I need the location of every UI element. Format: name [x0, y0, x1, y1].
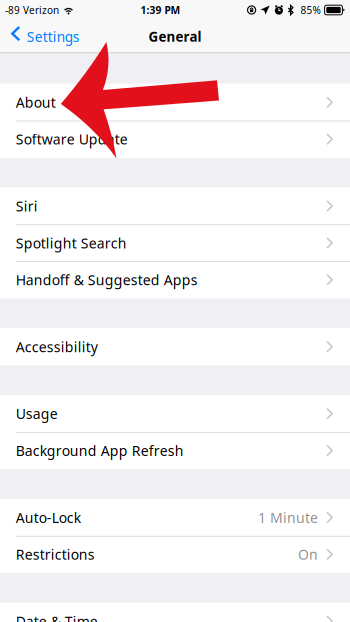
- staticText: Software Update: [16, 130, 128, 149]
- staticText: Accessibility: [16, 337, 98, 356]
- staticText: Restrictions: [16, 545, 95, 564]
- button[interactable]: About: [0, 84, 350, 121]
- button[interactable]: Usage: [0, 395, 350, 432]
- staticText: Auto-Lock: [16, 508, 81, 527]
- button[interactable]: Handoff & Suggested Apps: [0, 261, 350, 298]
- staticText: Siri: [16, 196, 38, 216]
- button[interactable]: Auto-Lock: [0, 499, 350, 536]
- button[interactable]: Date & Time: [0, 603, 350, 622]
- button[interactable]: Siri: [0, 188, 350, 224]
- staticText: About: [16, 93, 56, 112]
- button[interactable]: Accessibility: [0, 328, 350, 365]
- staticText: General: [148, 27, 201, 46]
- staticText: Usage: [16, 404, 58, 423]
- button[interactable]: Software Update: [0, 121, 350, 158]
- button[interactable]: Restrictions: [0, 536, 350, 573]
- staticText: Settings: [27, 27, 80, 46]
- button[interactable]: Back to Settings: [0, 22, 88, 51]
- button[interactable]: Spotlight Search: [0, 224, 350, 261]
- staticText: Background App Refresh: [16, 441, 184, 460]
- staticText: Date & Time: [16, 612, 98, 622]
- staticText: Spotlight Search: [16, 233, 127, 252]
- staticText: -89 Verizon: [5, 3, 59, 17]
- staticText: On: [298, 545, 318, 564]
- button[interactable]: Background App Refresh: [0, 432, 350, 469]
- staticText: 1 Minute: [258, 508, 318, 527]
- staticText: 85%: [301, 3, 321, 17]
- staticText: 1:39 PM: [140, 3, 180, 17]
- staticText: Handoff & Suggested Apps: [16, 270, 198, 289]
